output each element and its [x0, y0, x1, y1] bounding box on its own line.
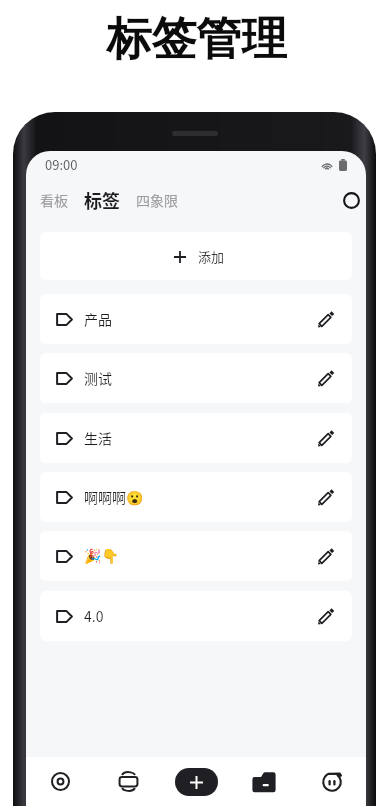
button[interactable]: Habits [94, 757, 162, 806]
button[interactable]: Edit [315, 486, 337, 508]
button[interactable]: Edit [315, 605, 337, 627]
button[interactable]: Edit [315, 427, 337, 449]
staticText: 产品 [84, 309, 112, 329]
staticText: 生活 [84, 428, 112, 448]
button[interactable]: 看板 [34, 184, 74, 216]
staticText: 09:00 [45, 155, 78, 174]
button[interactable]: Edit [315, 308, 337, 330]
staticText: 4.0 [84, 606, 104, 626]
button[interactable]: 添加 [40, 232, 352, 280]
button[interactable]: 啊啊啊😮 [40, 472, 352, 522]
button[interactable]: Folders [230, 757, 298, 806]
staticText: 标签管理 [8, 11, 377, 68]
button[interactable]: Edit [315, 367, 337, 389]
button[interactable]: Add task [162, 757, 230, 806]
staticText: 🎉👇 [84, 548, 119, 564]
staticText: 添加 [198, 247, 225, 266]
button[interactable]: 4.0 [40, 591, 352, 641]
button[interactable]: 测试 [40, 353, 352, 403]
button[interactable]: 四象限 [130, 184, 184, 216]
staticText: 测试 [84, 368, 112, 388]
button[interactable]: 🎉👇 [40, 531, 352, 581]
button[interactable]: Focus timer [26, 757, 94, 806]
button[interactable]: Profile [298, 757, 366, 806]
button[interactable]: Edit [315, 545, 337, 567]
button[interactable]: 生活 [40, 413, 352, 463]
staticText: 标签 [84, 187, 120, 213]
staticText: 四象限 [136, 190, 178, 210]
button[interactable]: 标签 [78, 183, 126, 217]
button[interactable]: 产品 [40, 294, 352, 344]
staticText: 啊啊啊😮 [84, 487, 144, 507]
staticText: 看板 [40, 190, 68, 210]
button[interactable]: Account [336, 185, 366, 215]
